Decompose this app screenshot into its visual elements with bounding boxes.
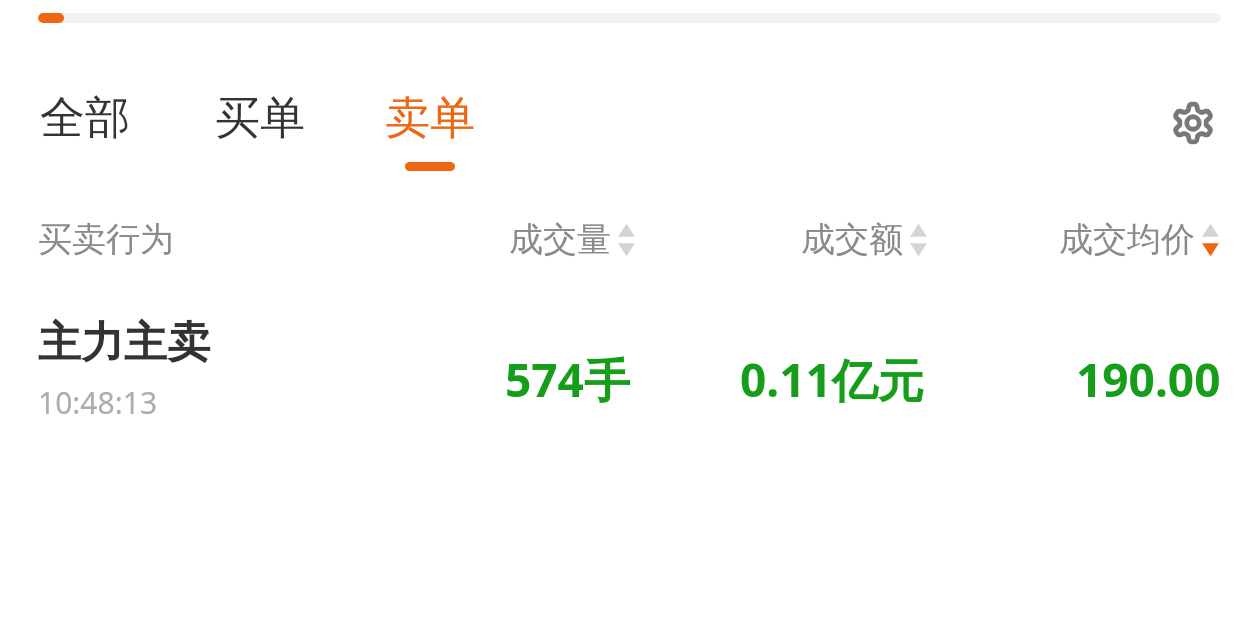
button[interactable]: Settings: [1164, 94, 1222, 152]
button[interactable]: 成交额: [669, 218, 929, 261]
staticText: 成交量: [509, 218, 611, 261]
staticText: 买单: [215, 90, 305, 147]
staticText: 卖单: [385, 90, 475, 147]
staticText: 买卖行为: [38, 218, 174, 261]
staticText: 全部: [40, 90, 130, 147]
button[interactable]: 全部: [34, 90, 136, 147]
staticText: 10:48:13: [38, 382, 158, 423]
staticText: 成交额: [801, 218, 903, 261]
button[interactable]: 卖单: [379, 90, 481, 171]
button[interactable]: [0, 300, 1260, 450]
staticText: 0.11亿元: [740, 348, 924, 411]
staticText: 574手: [505, 348, 630, 411]
button[interactable]: 成交均价: [961, 218, 1221, 261]
staticText: 成交均价: [1059, 218, 1195, 261]
staticText: 190.00: [1076, 348, 1221, 411]
staticText: 主力主卖: [38, 316, 210, 370]
button[interactable]: 成交量: [377, 218, 637, 261]
button[interactable]: 买单: [209, 90, 311, 147]
